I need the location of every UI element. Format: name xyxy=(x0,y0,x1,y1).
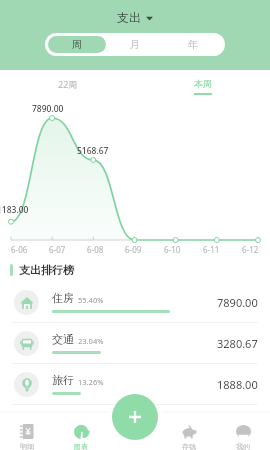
staticText: 55.40% xyxy=(78,295,104,305)
staticText: 6-07 xyxy=(49,244,66,255)
button[interactable]: 我的 xyxy=(216,412,270,450)
staticText: 旅行 xyxy=(52,373,74,387)
staticText: 7890.00 xyxy=(217,295,258,310)
staticText: 支出 xyxy=(117,10,141,25)
staticText: 5168.67 xyxy=(77,145,109,157)
button[interactable]: 年 xyxy=(164,36,222,53)
staticText: 1888.00 xyxy=(217,377,258,392)
staticText: 6-06 xyxy=(11,244,28,255)
staticText: 我的 xyxy=(236,442,250,450)
staticText: 6-12 xyxy=(242,244,259,255)
staticText: 23.04% xyxy=(78,336,104,346)
button[interactable]: 月 xyxy=(106,36,164,53)
staticText: 6-11 xyxy=(203,244,220,255)
button[interactable]: 住房 xyxy=(0,282,270,323)
staticText: 6-10 xyxy=(164,244,181,255)
button[interactable]: 周 xyxy=(48,36,106,53)
staticText: 存钱 xyxy=(182,442,196,450)
staticText: 3280.67 xyxy=(217,336,258,351)
button[interactable]: 交通 xyxy=(0,323,270,364)
staticText: 6-08 xyxy=(87,244,104,255)
staticText: 本周 xyxy=(194,78,212,89)
button[interactable]: 本周 xyxy=(192,76,214,97)
button[interactable]: 存钱 xyxy=(162,412,216,450)
button[interactable]: Add new record xyxy=(112,394,158,440)
button[interactable]: 22周 xyxy=(56,76,80,92)
staticText: 交通 xyxy=(52,332,74,346)
staticText: 13.26% xyxy=(78,377,104,387)
button[interactable]: 明细 xyxy=(0,412,54,450)
staticText: 7890.00 xyxy=(32,103,64,115)
staticText: 月 xyxy=(130,38,140,51)
staticText: 周 xyxy=(72,38,82,51)
staticText: 1183.00 xyxy=(0,204,29,216)
button[interactable]: 图表 xyxy=(54,412,108,450)
button[interactable]: 支出 xyxy=(113,8,157,27)
staticText: 图表 xyxy=(74,442,88,450)
staticText: 支出排行榜 xyxy=(19,263,74,277)
button[interactable]: 旅行 xyxy=(0,364,270,405)
staticText: 明细 xyxy=(20,442,34,450)
staticText: 6-09 xyxy=(125,244,142,255)
staticText: 住房 xyxy=(52,291,74,305)
staticText: 年 xyxy=(188,38,198,51)
